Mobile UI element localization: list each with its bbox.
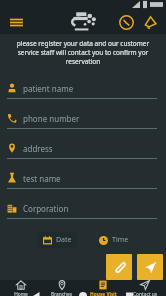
staticText: Contact us <box>133 291 157 296</box>
staticText: patient name <box>23 83 74 94</box>
staticText: Time <box>112 235 129 245</box>
button[interactable]: Date <box>38 232 77 248</box>
button[interactable]: Call center <box>115 11 137 33</box>
button[interactable]: Menu <box>6 12 26 32</box>
button[interactable]: Contact us <box>124 280 166 296</box>
button[interactable]: patient name <box>0 78 166 108</box>
button[interactable]: Home <box>0 280 41 296</box>
button[interactable]: phone number <box>0 108 166 138</box>
button[interactable]: House Visit <box>82 280 124 296</box>
staticText: Date <box>56 235 72 245</box>
staticText: Home <box>14 291 28 296</box>
staticText: Corporation <box>23 203 69 214</box>
staticText: House Visit <box>90 291 117 296</box>
button[interactable]: address <box>0 138 166 168</box>
staticText: Branches <box>51 291 72 296</box>
button[interactable]: Time <box>96 232 132 248</box>
staticText: phone number <box>23 113 80 124</box>
button[interactable]: Send <box>137 254 163 280</box>
button[interactable]: Notifications <box>139 11 161 33</box>
staticText: test name <box>23 173 61 184</box>
staticText: address <box>23 143 53 154</box>
button[interactable]: test name <box>0 168 166 198</box>
button[interactable]: Branches <box>41 280 82 296</box>
staticText: please register your data and our custom… <box>8 39 158 66</box>
button[interactable]: Corporation <box>0 198 166 228</box>
button[interactable]: Attach file <box>106 254 132 280</box>
